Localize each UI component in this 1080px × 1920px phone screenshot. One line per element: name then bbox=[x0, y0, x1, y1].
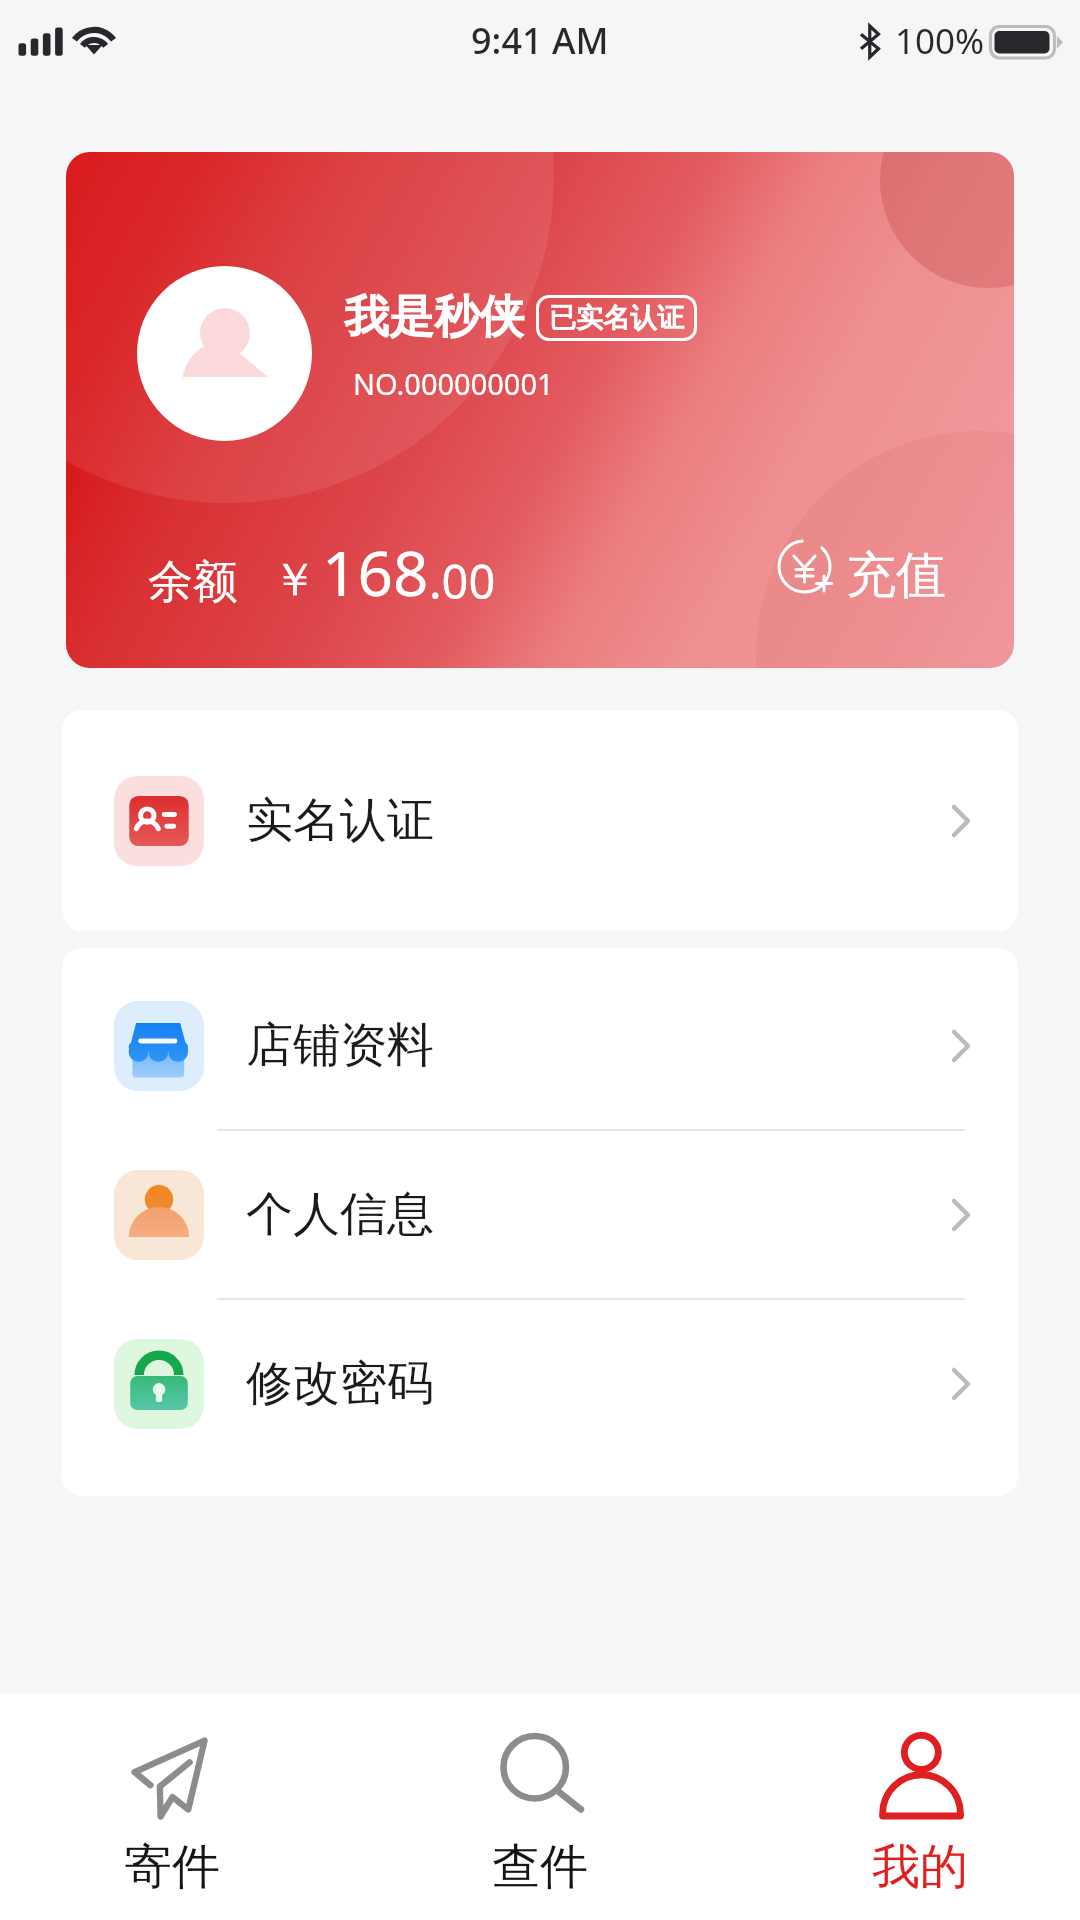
button[interactable]: 查件 bbox=[360, 1693, 720, 1897]
staticText: 个人信息 bbox=[246, 1185, 434, 1244]
button[interactable]: 实名认证 bbox=[62, 737, 1018, 904]
staticText: 已实名认证 bbox=[549, 301, 684, 335]
button[interactable]: 我是秒侠 bbox=[66, 152, 1014, 668]
staticText: 余额 bbox=[148, 554, 238, 611]
staticText: ￥ bbox=[272, 552, 317, 609]
button[interactable]: 我的 bbox=[740, 1693, 1080, 1897]
button[interactable]: 店铺资料 bbox=[62, 962, 1018, 1129]
staticText: 我是秒侠 bbox=[344, 289, 524, 346]
staticText: 9:41 AM bbox=[471, 16, 609, 65]
staticText: .00 bbox=[429, 549, 496, 613]
staticText: 实名认证 bbox=[246, 791, 434, 850]
staticText: 修改密码 bbox=[246, 1354, 434, 1413]
button[interactable]: 个人信息 bbox=[62, 1131, 1018, 1298]
staticText: 我的 bbox=[872, 1837, 968, 1897]
button[interactable]: 充值 bbox=[764, 538, 952, 613]
staticText: 寄件 bbox=[124, 1837, 220, 1897]
button[interactable]: 寄件 bbox=[0, 1693, 352, 1897]
staticText: 查件 bbox=[492, 1837, 588, 1897]
staticText: 充值 bbox=[846, 544, 946, 607]
staticText: 100% bbox=[895, 17, 985, 65]
button[interactable]: 修改密码 bbox=[62, 1300, 1018, 1467]
staticText: 168 bbox=[322, 530, 429, 614]
staticText: NO.000000001 bbox=[353, 364, 554, 403]
staticText: 店铺资料 bbox=[246, 1016, 434, 1075]
